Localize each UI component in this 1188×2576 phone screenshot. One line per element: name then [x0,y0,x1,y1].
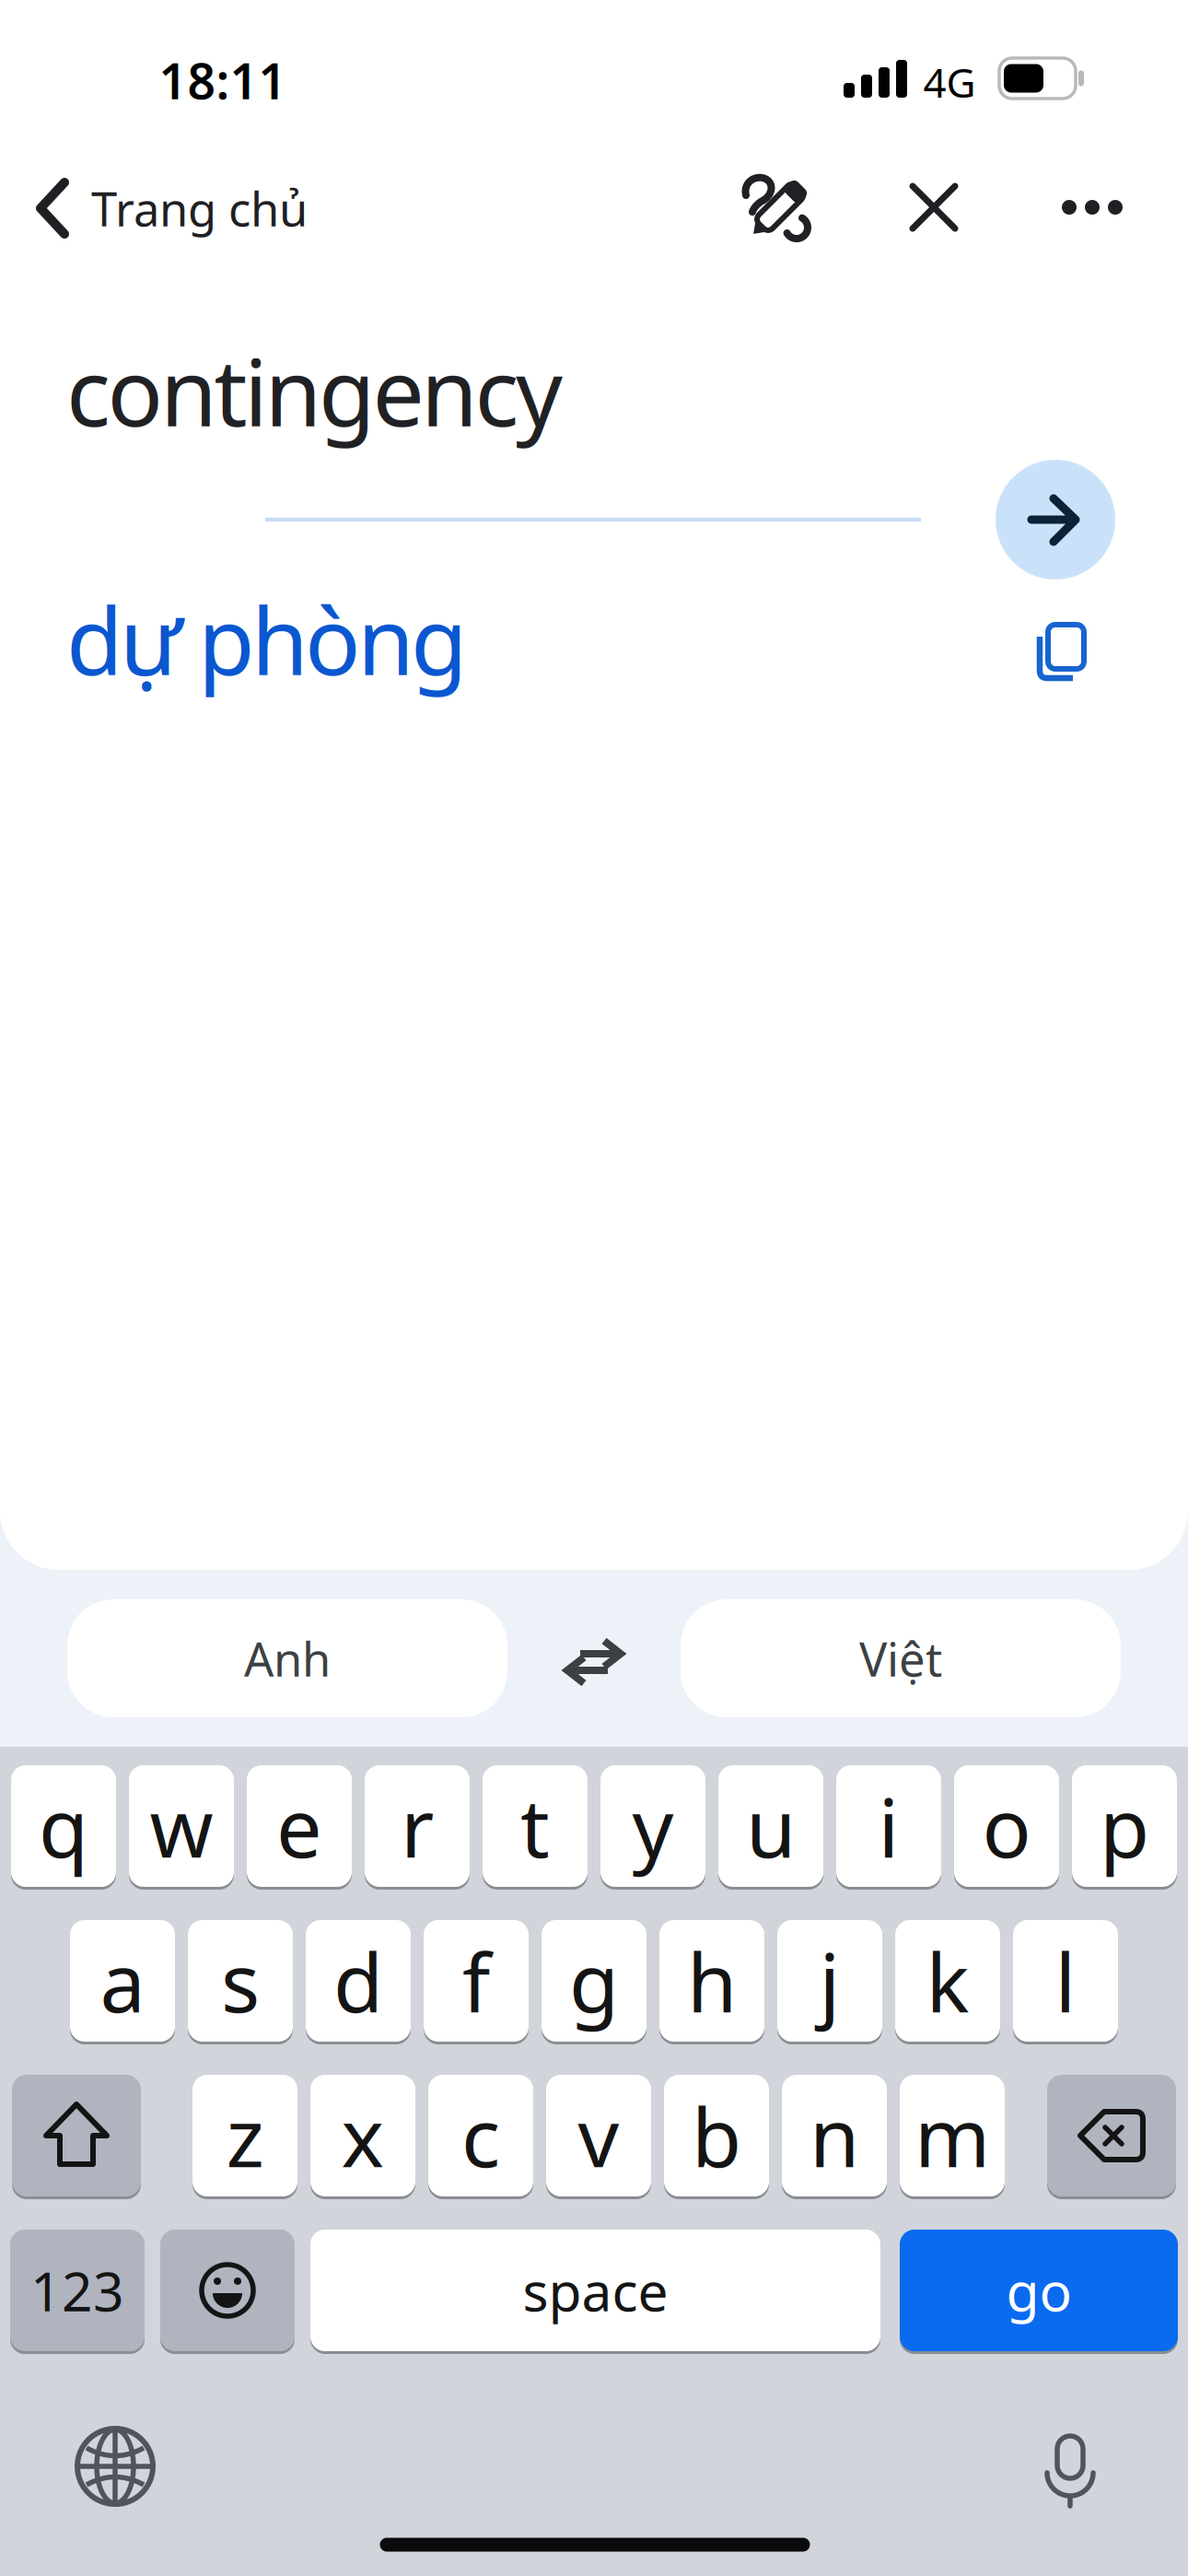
button[interactable]: Delete [1047,2075,1176,2196]
button[interactable]: 123 [10,2230,145,2351]
button[interactable]: space [310,2230,880,2351]
staticText: contingency [66,329,563,452]
button[interactable]: o [954,1765,1059,1887]
staticText: n [809,2082,859,2190]
button[interactable]: w [129,1765,234,1887]
staticText: dự phòng [66,578,468,701]
button[interactable]: c [428,2075,533,2196]
staticText: go [1006,2254,1072,2326]
staticText: w [150,1772,213,1880]
button[interactable]: x [310,2075,415,2196]
staticText: space [523,2254,668,2326]
button[interactable]: Next keyboard [69,2420,161,2512]
button[interactable]: e [247,1765,352,1887]
staticText: u [746,1772,796,1880]
button[interactable]: z [192,2075,297,2196]
staticText: r [401,1772,434,1880]
staticText: e [276,1772,322,1880]
button[interactable]: Shift [12,2075,141,2196]
staticText: Trang chủ [91,177,308,239]
button[interactable]: Close [897,170,971,244]
button[interactable]: i [836,1765,941,1887]
button[interactable]: t [483,1765,588,1887]
staticText: s [221,1927,260,2035]
button[interactable]: f [424,1920,529,2042]
staticText: h [687,1927,737,2035]
button[interactable]: q [11,1765,116,1887]
staticText: a [100,1927,145,2035]
button[interactable]: More options [1044,170,1140,244]
staticText: o [982,1772,1031,1880]
button[interactable]: n [782,2075,887,2196]
staticText: y [632,1772,674,1880]
staticText: 123 [30,2254,124,2326]
staticText: i [878,1772,899,1880]
button[interactable]: Anh [67,1599,507,1717]
staticText: v [578,2082,619,2190]
staticText: p [1100,1772,1149,1880]
button[interactable]: Copy translation [1022,614,1096,687]
staticText: l [1055,1927,1076,2035]
staticText: q [39,1772,88,1880]
staticText: b [692,2082,741,2190]
button[interactable]: j [777,1920,882,2042]
button[interactable]: Handwriting input [740,170,817,248]
button[interactable]: Dictation [1024,2425,1116,2517]
staticText: d [333,1927,383,2035]
button[interactable]: Việt [681,1599,1121,1717]
button[interactable]: s [188,1920,293,2042]
staticText: x [341,2082,384,2190]
staticText: m [914,2082,990,2190]
button[interactable]: r [365,1765,470,1887]
staticText: Việt [859,1627,942,1689]
button[interactable]: y [600,1765,705,1887]
button[interactable]: k [895,1920,1000,2042]
button[interactable]: b [664,2075,769,2196]
button[interactable]: v [546,2075,651,2196]
button[interactable]: m [900,2075,1005,2196]
button[interactable]: u [718,1765,823,1887]
button[interactable]: p [1072,1765,1177,1887]
staticText: 4G [923,55,976,109]
button[interactable]: d [306,1920,411,2042]
staticText: f [462,1927,490,2035]
staticText: 18:11 [159,48,287,113]
staticText: c [461,2082,500,2190]
button[interactable]: Swap languages [553,1624,635,1698]
button[interactable]: l [1013,1920,1118,2042]
button[interactable]: Back [37,162,424,254]
staticText: j [819,1927,840,2035]
button[interactable]: h [659,1920,764,2042]
staticText: g [569,1927,619,2035]
staticText: t [520,1772,550,1880]
button[interactable]: Emoji [160,2230,295,2351]
staticText: z [226,2082,264,2190]
button[interactable]: a [70,1920,175,2042]
button[interactable]: g [542,1920,646,2042]
staticText: k [926,1927,969,2035]
button[interactable]: Translate [996,460,1115,580]
button[interactable]: go [900,2230,1178,2351]
staticText: Anh [244,1627,331,1689]
